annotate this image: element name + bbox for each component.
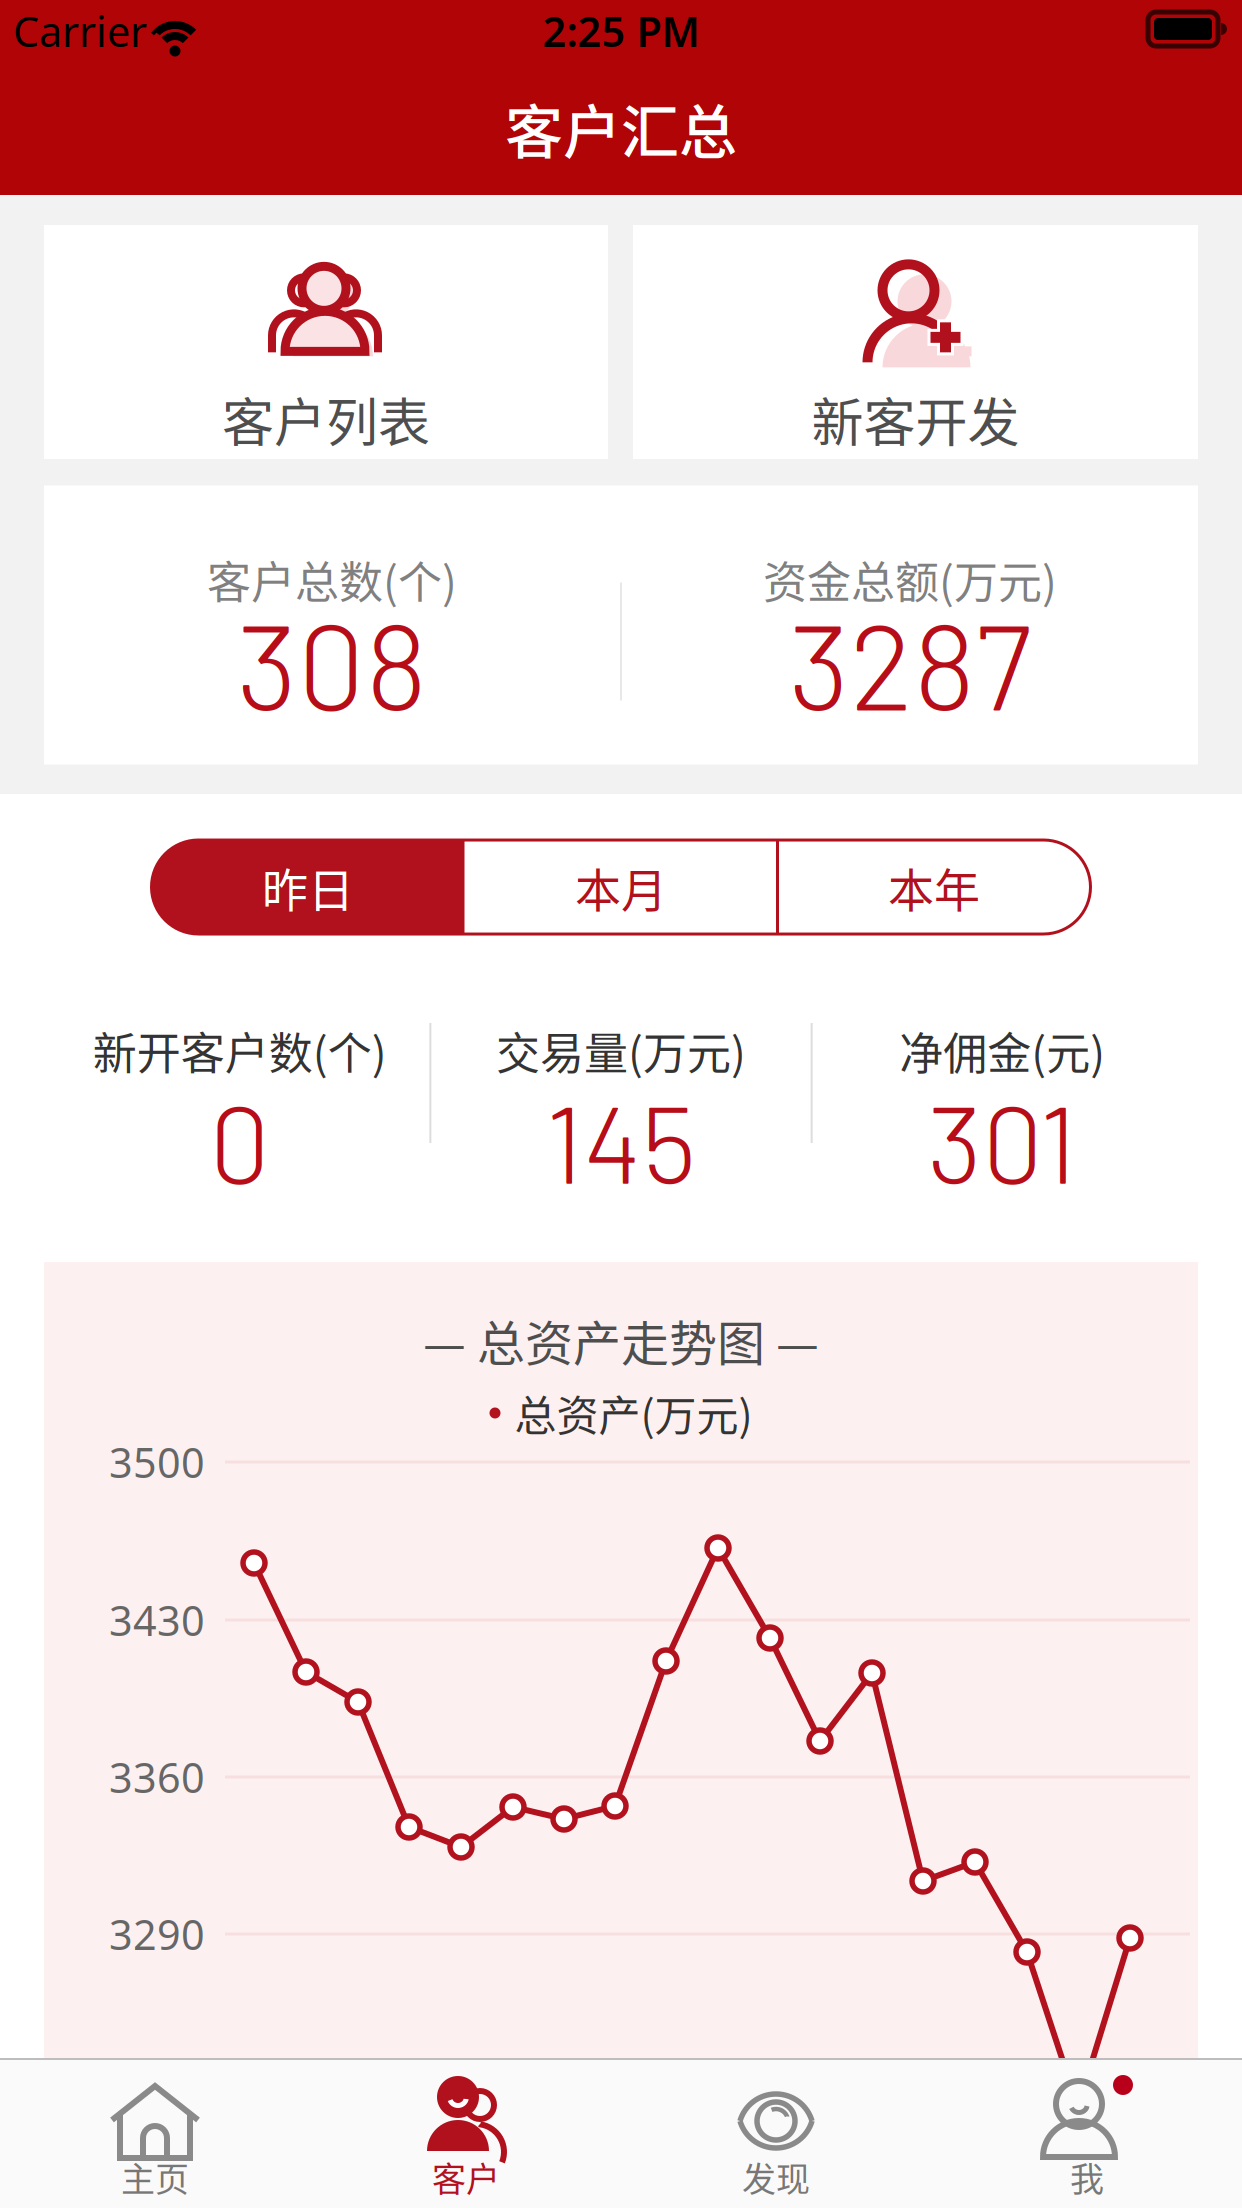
staticText: 新开客户数(个)	[93, 1019, 387, 1082]
button[interactable]: 客户	[310, 2058, 621, 2208]
staticText: 总资产(万元)	[514, 1383, 752, 1443]
staticText: 新客开发	[811, 381, 1019, 457]
staticText: 资金总额(万元)	[763, 548, 1057, 611]
staticText: 本年	[888, 854, 980, 920]
button[interactable]: 主页	[0, 2058, 310, 2208]
button[interactable]: 我	[931, 2058, 1242, 2208]
staticText: 交易量(万元)	[496, 1019, 746, 1082]
staticText: 3287	[788, 590, 1031, 734]
button[interactable]: 发现	[621, 2058, 931, 2208]
staticText: 308	[236, 590, 427, 734]
button[interactable]: 本年	[777, 840, 1090, 934]
button[interactable]: 昨日	[151, 840, 464, 934]
button[interactable]: 新客开发	[633, 225, 1198, 459]
button[interactable]: 客户列表	[44, 225, 608, 459]
staticText: — 总资产走势图 —	[423, 1305, 819, 1375]
staticText: 我	[1070, 2152, 1104, 2202]
staticText: 3430	[109, 1593, 205, 1647]
staticText: 3290	[109, 1907, 205, 1961]
button[interactable]: 本月	[464, 840, 777, 934]
staticText: 发现	[742, 2152, 810, 2202]
staticText: 主页	[121, 2152, 189, 2202]
staticText: 客户总数(个)	[207, 548, 457, 611]
staticText: 3500	[109, 1435, 205, 1489]
staticText: 2:25 PM	[542, 4, 699, 58]
staticText: 客户列表	[222, 381, 430, 457]
staticText: 145	[545, 1076, 696, 1205]
staticText: 本月	[575, 854, 667, 920]
staticText: 客户	[432, 2152, 500, 2202]
staticText: 昨日	[262, 854, 354, 920]
staticText: 3360	[109, 1750, 205, 1804]
staticText: Carrier	[13, 4, 147, 58]
staticText: 301	[927, 1076, 1077, 1205]
staticText: 0	[209, 1076, 270, 1205]
staticText: 净佣金(元)	[899, 1019, 1105, 1082]
staticText: 客户汇总	[505, 86, 737, 170]
